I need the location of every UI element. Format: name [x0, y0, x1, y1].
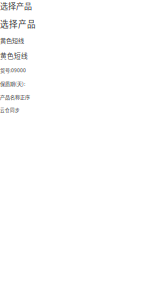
staticText: 产品名称正序 [0, 93, 30, 100]
staticText: 保质期(天): [0, 80, 25, 87]
staticText: 选择产品 [0, 18, 36, 30]
staticText: 黄色短线 [0, 51, 28, 60]
staticText: 黄色短线 [0, 36, 24, 45]
staticText: 选择产品 [0, 0, 32, 12]
staticText: 货号:09000 [0, 66, 26, 74]
staticText: 云仓同步 [0, 106, 20, 113]
